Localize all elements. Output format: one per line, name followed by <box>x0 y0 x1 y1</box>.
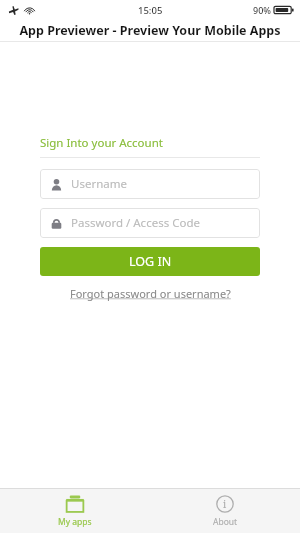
staticText: Sign Into your Account <box>40 135 163 151</box>
button[interactable]: My apps <box>0 489 150 533</box>
staticText: 15:05 <box>138 4 163 17</box>
staticText: Username <box>71 176 127 192</box>
staticText: Forgot password or username? <box>70 286 231 301</box>
staticText: About <box>213 516 238 528</box>
staticText: App Previewer - Preview Your Mobile Apps <box>19 22 281 39</box>
button[interactable]: i <box>150 489 300 533</box>
staticText: My apps <box>58 516 92 528</box>
button[interactable]: Forgot password or username? <box>66 285 235 302</box>
staticText: LOG IN <box>129 253 172 270</box>
staticText: i <box>223 497 227 511</box>
staticText: 90% <box>253 4 271 16</box>
button[interactable]: LOG IN <box>40 247 260 276</box>
staticText: Password / Access Code <box>71 215 200 231</box>
button[interactable]: Password / Access Code <box>40 208 260 238</box>
button[interactable]: Username <box>40 169 260 199</box>
